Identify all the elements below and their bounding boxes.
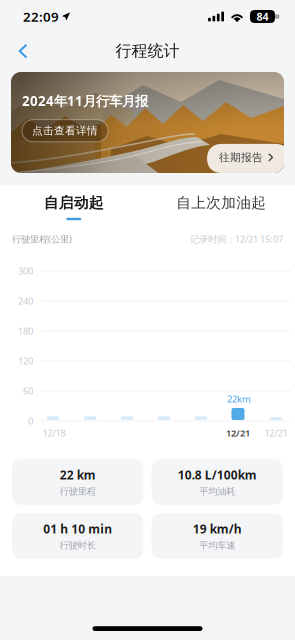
staticText: 点击查看详情 — [32, 124, 98, 137]
staticText: 22:09 — [23, 8, 59, 25]
staticText: 22km — [227, 393, 251, 405]
button[interactable]: 01 h 10 min — [12, 513, 143, 559]
staticText: 01 h 10 min — [43, 521, 112, 537]
button[interactable]: 自启动起 — [0, 185, 147, 229]
staticText: 平均车速 — [199, 540, 235, 551]
staticText: 0 — [28, 415, 33, 427]
staticText: 120 — [18, 355, 33, 367]
staticText: 180 — [18, 325, 33, 337]
button[interactable]: 2024年11月行车月报 — [11, 72, 284, 173]
staticText: 2024年11月行车月报 — [22, 92, 148, 110]
staticText: 往期报告 — [219, 151, 263, 164]
staticText: 300 — [18, 265, 33, 277]
staticText: 12/21 — [264, 427, 287, 439]
staticText: 行驶里程 — [60, 486, 96, 497]
staticText: 240 — [18, 295, 33, 307]
button[interactable]: 19 km/h — [151, 513, 283, 559]
staticText: 平均油耗 — [199, 486, 235, 497]
button[interactable]: Back — [5, 34, 41, 68]
staticText: 60 — [23, 385, 33, 397]
staticText: 19 km/h — [193, 521, 242, 537]
button[interactable]: 22 km — [12, 459, 143, 505]
staticText: 行驶里程(公里) — [12, 233, 72, 245]
staticText: 记录时间：12/21 15:07 — [190, 233, 283, 245]
button[interactable]: 10.8 L/100km — [151, 459, 283, 505]
staticText: 12/18 — [42, 427, 65, 439]
staticText: 84 — [256, 9, 268, 24]
staticText: 10.8 L/100km — [178, 467, 257, 483]
staticText: 12/21 — [226, 427, 250, 439]
staticText: 行驶时长 — [60, 540, 96, 551]
staticText: 自上次加油起 — [176, 194, 266, 212]
staticText: 22 km — [60, 467, 96, 483]
button[interactable]: 往期报告 — [207, 144, 284, 173]
staticText: 行程统计 — [115, 41, 179, 61]
button[interactable]: 自上次加油起 — [147, 185, 295, 229]
button[interactable]: 点击查看详情 — [22, 120, 108, 142]
staticText: 自启动起 — [44, 194, 104, 212]
